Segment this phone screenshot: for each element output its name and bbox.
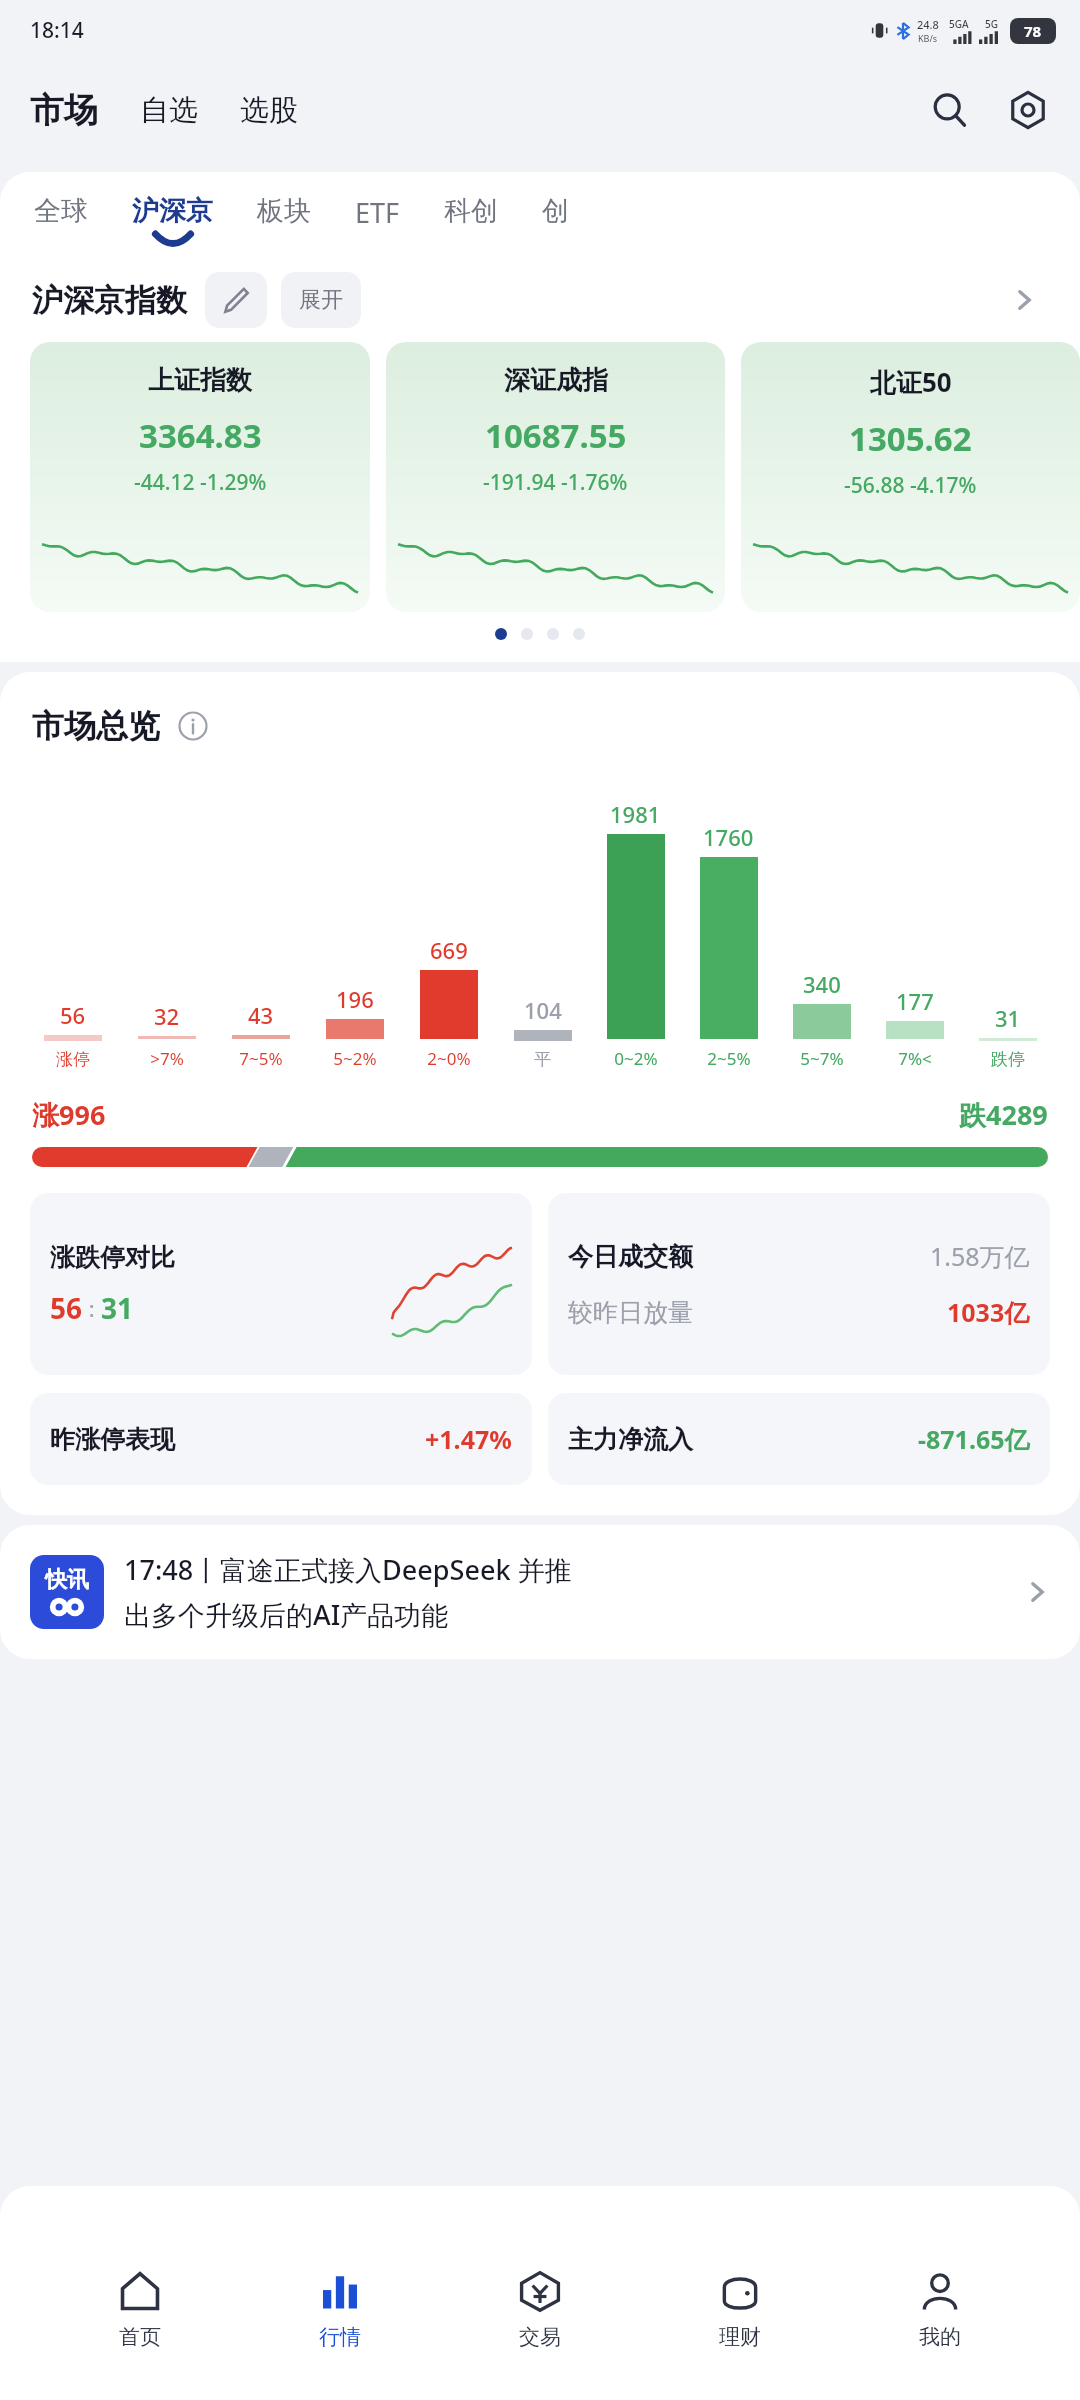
staticText: 32 bbox=[154, 1001, 180, 1031]
staticText: 7~5% bbox=[239, 1047, 283, 1070]
staticText: 104 bbox=[524, 995, 562, 1025]
staticText: 理财 bbox=[719, 2324, 761, 2350]
staticText: 1981 bbox=[610, 799, 661, 829]
button[interactable]: 交易 bbox=[480, 2260, 600, 2354]
button[interactable]: 上证指数 bbox=[30, 342, 370, 612]
staticText: 340 bbox=[803, 969, 841, 999]
staticText: 1760 bbox=[703, 822, 754, 852]
button[interactable]: 选股 bbox=[240, 92, 298, 132]
button[interactable]: 沪深京 bbox=[126, 194, 219, 246]
staticText: 市场 bbox=[30, 89, 98, 132]
staticText: 创 bbox=[542, 194, 569, 228]
staticText: 市场总览 bbox=[32, 706, 160, 746]
staticText: KB/s bbox=[918, 32, 938, 44]
staticText: 5~2% bbox=[333, 1047, 377, 1070]
staticText: 56 bbox=[50, 1289, 83, 1327]
button[interactable]: 科创 bbox=[438, 194, 504, 228]
staticText: -56.88 -4.17% bbox=[844, 471, 977, 500]
staticText: 18:14 bbox=[30, 16, 84, 45]
button[interactable]: 理财 bbox=[680, 2260, 800, 2354]
staticText: 出多个升级后的AI产品功能 bbox=[124, 1596, 449, 1633]
staticText: 北证50 bbox=[870, 364, 952, 400]
staticText: 展开 bbox=[299, 286, 343, 314]
staticText: 主力净流入 bbox=[568, 1424, 693, 1455]
staticText: 选股 bbox=[240, 92, 298, 129]
button[interactable]: 深证成指 bbox=[386, 342, 725, 612]
staticText: 5G bbox=[985, 17, 998, 31]
staticText: 0~2% bbox=[614, 1047, 658, 1070]
staticText: +1.47% bbox=[425, 1422, 512, 1456]
staticText: 31 bbox=[101, 1289, 134, 1327]
staticText: 10687.55 bbox=[485, 413, 627, 458]
staticText: -191.94 -1.76% bbox=[483, 468, 628, 497]
button[interactable]: Info bbox=[176, 709, 210, 743]
staticText: >7% bbox=[150, 1047, 184, 1070]
staticText: 涨停 bbox=[56, 1049, 90, 1070]
staticText: 今日成交额 bbox=[568, 1241, 693, 1272]
staticText: 24.8 bbox=[917, 17, 939, 32]
staticText: 快讯 bbox=[45, 1566, 89, 1594]
staticText: 5~7% bbox=[800, 1047, 844, 1070]
button[interactable]: 创 bbox=[536, 194, 575, 228]
staticText: 上证指数 bbox=[148, 364, 252, 397]
staticText: 1033亿 bbox=[947, 1295, 1030, 1329]
staticText: -871.65亿 bbox=[918, 1422, 1030, 1456]
button[interactable]: Search bbox=[924, 84, 976, 136]
button[interactable]: 我的 bbox=[880, 2260, 1000, 2354]
staticText: 科创 bbox=[444, 194, 498, 228]
staticText: 196 bbox=[336, 984, 374, 1014]
button[interactable]: 今日成交额 bbox=[548, 1193, 1050, 1375]
staticText: -44.12 -1.29% bbox=[134, 468, 267, 497]
staticText: 较昨日放量 bbox=[568, 1297, 693, 1328]
staticText: 1.58万亿 bbox=[930, 1239, 1030, 1273]
staticText: 2~0% bbox=[427, 1047, 471, 1070]
staticText: 全球 bbox=[34, 194, 88, 228]
button[interactable]: 板块 bbox=[251, 194, 317, 228]
button[interactable]: More bbox=[1000, 276, 1048, 324]
button[interactable]: 市场 bbox=[30, 89, 98, 132]
staticText: 交易 bbox=[519, 2324, 561, 2350]
button[interactable]: 展开 bbox=[281, 272, 361, 328]
staticText: 平 bbox=[534, 1049, 551, 1070]
staticText: 1305.62 bbox=[849, 416, 972, 461]
staticText: 昨涨停表现 bbox=[50, 1424, 175, 1455]
staticText: 板块 bbox=[257, 194, 311, 228]
staticText: 自选 bbox=[140, 92, 198, 129]
staticText: 669 bbox=[430, 935, 468, 965]
button[interactable]: 全球 bbox=[28, 194, 94, 228]
staticText: 跌停 bbox=[991, 1049, 1025, 1070]
staticText: 沪深京 bbox=[132, 194, 213, 228]
button[interactable]: 昨涨停表现 bbox=[30, 1393, 532, 1485]
button[interactable]: 快讯 bbox=[30, 1551, 1050, 1633]
staticText: 我的 bbox=[919, 2324, 961, 2350]
staticText: 涨996 bbox=[32, 1096, 106, 1133]
staticText: 56 bbox=[60, 1000, 86, 1030]
staticText: 深证成指 bbox=[504, 364, 608, 397]
staticText: 首页 bbox=[119, 2324, 161, 2350]
button[interactable]: ETF bbox=[349, 194, 406, 231]
button[interactable]: 主力净流入 bbox=[548, 1393, 1050, 1485]
button[interactable]: 行情 bbox=[280, 2260, 400, 2354]
staticText: 跌4289 bbox=[959, 1096, 1048, 1133]
staticText: 沪深京指数 bbox=[32, 281, 187, 320]
staticText: : bbox=[83, 1293, 101, 1323]
staticText: 177 bbox=[896, 986, 934, 1016]
staticText: 31 bbox=[995, 1003, 1021, 1033]
button[interactable]: 涨跌停对比 bbox=[30, 1193, 532, 1375]
button[interactable]: 首页 bbox=[80, 2260, 200, 2354]
button[interactable]: 北证50 bbox=[741, 342, 1080, 612]
button[interactable]: Edit bbox=[205, 272, 267, 328]
staticText: 7%< bbox=[898, 1047, 932, 1070]
staticText: 2~5% bbox=[707, 1047, 751, 1070]
button[interactable]: 自选 bbox=[140, 92, 198, 132]
staticText: 5GA bbox=[949, 17, 969, 31]
staticText: ETF bbox=[355, 194, 400, 231]
staticText: 43 bbox=[248, 1000, 274, 1030]
button[interactable]: Settings bbox=[1002, 84, 1054, 136]
staticText: 行情 bbox=[319, 2324, 361, 2350]
staticText: 17:48丨富途正式接入DeepSeek 并推 bbox=[124, 1551, 572, 1588]
staticText: 涨跌停对比 bbox=[50, 1242, 175, 1273]
staticText: 3364.83 bbox=[139, 413, 262, 458]
staticText: 78 bbox=[1024, 21, 1042, 41]
